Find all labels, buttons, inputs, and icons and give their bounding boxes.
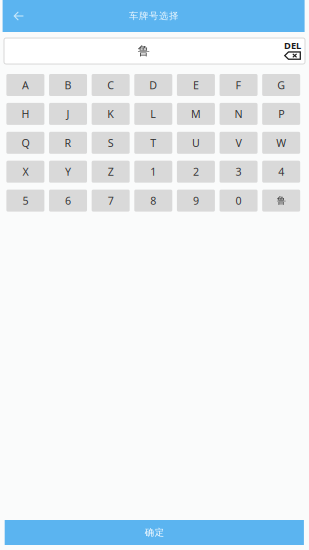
staticText: T [150,136,156,150]
button[interactable]: M [177,103,215,125]
button[interactable]: J [49,103,87,125]
button[interactable]: H [6,103,44,125]
button[interactable]: 6 [49,190,87,212]
staticText: J [66,107,69,121]
staticText: W [276,136,286,150]
button[interactable]: 7 [92,190,130,212]
button[interactable]: F [220,74,258,96]
button[interactable]: C [92,74,130,96]
button[interactable]: W [262,132,300,154]
button[interactable]: 2 [177,161,215,183]
button[interactable]: R [49,132,87,154]
staticText: 4 [278,165,284,179]
staticText: S [108,136,114,150]
staticText: 5 [22,193,28,208]
staticText: F [236,78,242,92]
staticText: Q [21,136,29,150]
staticText: X [22,165,28,179]
button[interactable]: 4 [262,161,300,183]
staticText: R [64,136,71,150]
staticText: B [64,78,71,92]
button[interactable]: Back [3,0,31,32]
staticText: V [236,136,242,150]
button[interactable]: 9 [177,190,215,212]
button[interactable]: S [92,132,130,154]
staticText: A [22,78,29,92]
staticText: M [191,107,201,121]
staticText: 8 [150,193,156,208]
button[interactable]: T [134,132,172,154]
button[interactable]: G [262,74,300,96]
staticText: 9 [193,193,199,208]
staticText: K [107,107,114,121]
button[interactable]: 8 [134,190,172,212]
button[interactable]: 5 [6,190,44,212]
staticText: 7 [108,193,114,208]
button[interactable]: E [177,74,215,96]
button[interactable]: Delete [283,42,301,60]
staticText: E [193,78,199,92]
staticText: 车牌号选择 [129,10,178,22]
staticText: N [235,107,243,121]
staticText: H [21,107,29,121]
staticText: Y [65,165,71,179]
button[interactable]: X [6,161,44,183]
staticText: 鲁 [138,44,150,58]
button[interactable]: 0 [220,190,258,212]
staticText: G [277,78,285,92]
staticText: 3 [236,165,242,179]
button[interactable]: D [134,74,172,96]
staticText: D [149,78,157,92]
staticText: C [107,78,114,92]
button[interactable]: U [177,132,215,154]
staticText: 1 [150,165,156,179]
button[interactable]: Z [92,161,130,183]
staticText: L [150,107,156,121]
button[interactable]: L [134,103,172,125]
button[interactable]: P [262,103,300,125]
staticText: 鲁 [277,195,286,206]
staticText: 2 [193,165,199,179]
button[interactable]: 3 [220,161,258,183]
staticText: 0 [236,193,242,208]
button[interactable]: N [220,103,258,125]
staticText: 确定 [145,527,164,538]
button[interactable]: 鲁 [262,190,300,212]
button[interactable]: B [49,74,87,96]
staticText: Z [108,165,114,179]
button[interactable]: A [6,74,44,96]
button[interactable]: Q [6,132,44,154]
button[interactable]: 确定 [5,520,304,545]
button[interactable]: K [92,103,130,125]
button[interactable]: Y [49,161,87,183]
staticText: 6 [65,193,71,208]
staticText: U [192,136,200,150]
staticText: P [278,107,284,121]
button[interactable]: 1 [134,161,172,183]
button[interactable]: V [220,132,258,154]
staticText: DEL [284,39,301,52]
